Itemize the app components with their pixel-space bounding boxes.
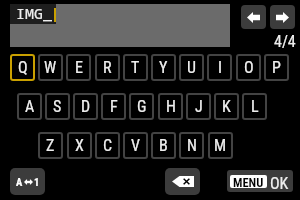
staticText: 4/4 [274, 32, 296, 48]
staticText: D [81, 97, 91, 116]
button[interactable]: X [67, 132, 92, 159]
staticText: I [218, 58, 222, 77]
staticText: P [272, 58, 281, 77]
button[interactable]: A [10, 168, 45, 195]
staticText: A [16, 176, 23, 188]
staticText: Q [18, 58, 28, 77]
staticText: H [166, 97, 176, 116]
button[interactable]: Backspace [165, 168, 200, 195]
staticText: M [214, 136, 227, 155]
button[interactable]: R [95, 54, 120, 81]
button[interactable]: IMG_ [10, 4, 56, 24]
button[interactable]: J [186, 93, 211, 120]
button[interactable]: Y [151, 54, 176, 81]
button[interactable]: B [151, 132, 176, 159]
button[interactable]: O [236, 54, 261, 81]
button[interactable]: U [179, 54, 204, 81]
staticText: G [137, 97, 147, 116]
button[interactable]: M [208, 132, 233, 159]
button[interactable]: D [73, 93, 98, 120]
button[interactable]: C [95, 132, 120, 159]
staticText: T [131, 58, 140, 77]
button[interactable]: A [17, 93, 42, 120]
button[interactable]: Previous [241, 5, 266, 29]
staticText: K [222, 97, 231, 116]
staticText: V [131, 136, 140, 155]
staticText: IMG_ [16, 3, 53, 23]
staticText: S [53, 97, 62, 116]
button[interactable]: Next [270, 5, 295, 29]
button[interactable]: F [101, 93, 126, 120]
staticText: A [25, 97, 35, 116]
button[interactable]: I [207, 54, 232, 81]
button[interactable]: Q [10, 54, 35, 81]
staticText: MENU [233, 175, 264, 188]
button[interactable]: E [66, 54, 91, 81]
staticText: Z [46, 136, 55, 155]
staticText: 1 [34, 176, 40, 188]
button[interactable]: MENU [227, 170, 293, 192]
staticText: Y [159, 58, 168, 77]
button[interactable]: G [129, 93, 154, 120]
staticText: B [159, 136, 168, 155]
button[interactable]: H [158, 93, 183, 120]
staticText: W [44, 58, 57, 77]
button[interactable]: V [123, 132, 148, 159]
button[interactable]: N [179, 132, 204, 159]
button[interactable]: Z [38, 132, 63, 159]
button[interactable]: L [242, 93, 267, 120]
staticText: N [187, 136, 197, 155]
staticText: J [195, 97, 203, 116]
staticText: E [75, 58, 83, 77]
button[interactable]: T [123, 54, 148, 81]
staticText: F [110, 97, 118, 116]
staticText: R [103, 58, 112, 77]
staticText: X [75, 136, 84, 155]
button[interactable]: S [45, 93, 70, 120]
button[interactable]: K [214, 93, 239, 120]
staticText: U [187, 58, 196, 77]
button[interactable]: W [38, 54, 63, 81]
staticText: C [103, 136, 113, 155]
staticText: L [251, 97, 259, 116]
button[interactable]: P [264, 54, 289, 81]
staticText: OK [270, 174, 289, 189]
staticText: O [244, 58, 254, 77]
